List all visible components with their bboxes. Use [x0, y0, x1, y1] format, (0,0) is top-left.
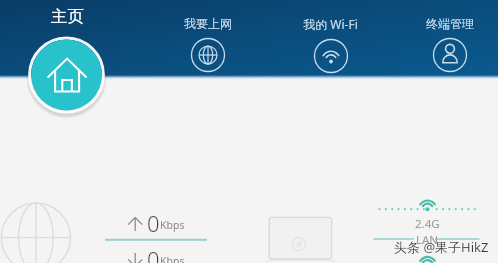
- button[interactable]: 主页: [25, 2, 109, 120]
- staticText: 主页: [51, 6, 84, 26]
- staticText: 我要上网: [184, 16, 232, 31]
- staticText: 0: [147, 244, 160, 263]
- button[interactable]: My Wi-Fi: [292, 16, 368, 78]
- button[interactable]: Device management: [412, 16, 488, 78]
- staticText: 终端管理: [426, 16, 474, 31]
- staticText: 头条 @果子HikZ: [394, 238, 489, 256]
- staticText: 2.4G: [415, 216, 440, 231]
- staticText: 我的 Wi-Fi: [303, 16, 358, 32]
- staticText: LAN: [416, 232, 439, 247]
- staticText: Kbps: [160, 254, 185, 263]
- button[interactable]: Internet access: [170, 16, 246, 78]
- staticText: 0: [147, 208, 160, 238]
- staticText: Kbps: [160, 218, 185, 232]
